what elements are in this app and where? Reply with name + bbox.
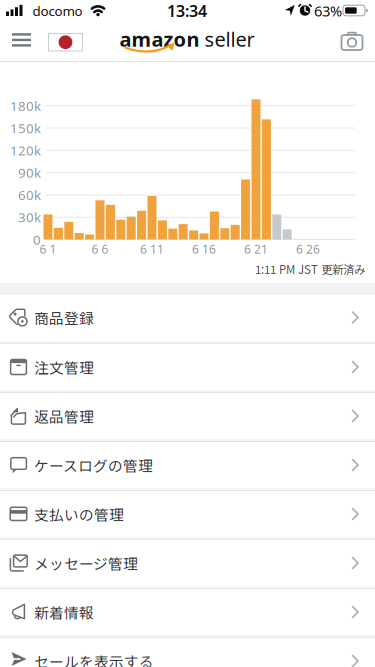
button[interactable]: ケースログの管理 <box>0 442 375 488</box>
button[interactable]: 注文管理 <box>0 344 375 390</box>
button[interactable]: Menu <box>12 32 31 48</box>
button[interactable]: 新着情報 <box>0 589 375 635</box>
staticText: 6 21 <box>244 241 268 257</box>
staticText: 120k <box>10 141 41 159</box>
button[interactable]: Scan product <box>340 31 364 52</box>
staticText: 63% <box>314 1 342 21</box>
staticText: 注文管理 <box>34 356 94 378</box>
button[interactable]: Marketplace: Japan <box>48 33 83 51</box>
button[interactable]: セールを表示する <box>0 638 375 667</box>
button[interactable]: 商品登録 <box>0 294 375 341</box>
staticText: docomo <box>32 2 82 20</box>
staticText: 60k <box>18 186 41 204</box>
staticText: 新着情報 <box>34 601 94 623</box>
button[interactable]: 返品管理 <box>0 393 375 439</box>
staticText: 0 <box>33 231 41 248</box>
staticText: seller <box>199 26 254 52</box>
button[interactable]: メッセージ管理 <box>0 540 375 586</box>
staticText: 30k <box>18 208 41 226</box>
staticText: 商品登録 <box>34 307 94 328</box>
staticText: 180k <box>10 97 41 115</box>
staticText: 1:11 PM JST 更新済み <box>255 261 365 277</box>
staticText: 150k <box>10 119 41 137</box>
staticText: 支払いの管理 <box>34 503 124 525</box>
staticText: 返品管理 <box>34 405 94 427</box>
button[interactable]: 支払いの管理 <box>0 491 375 537</box>
staticText: 6 26 <box>296 241 320 257</box>
staticText: 6 6 <box>91 241 108 257</box>
staticText: 90k <box>18 164 41 181</box>
staticText: セールを表示する <box>34 650 154 667</box>
staticText: メッセージ管理 <box>34 552 138 574</box>
staticText: 6 16 <box>192 241 216 257</box>
staticText: 13:34 <box>167 0 207 21</box>
staticText: 6 11 <box>140 241 164 257</box>
staticText: amazon <box>119 26 199 52</box>
staticText: ケースログの管理 <box>34 454 153 476</box>
staticText: 6 1 <box>39 241 56 257</box>
